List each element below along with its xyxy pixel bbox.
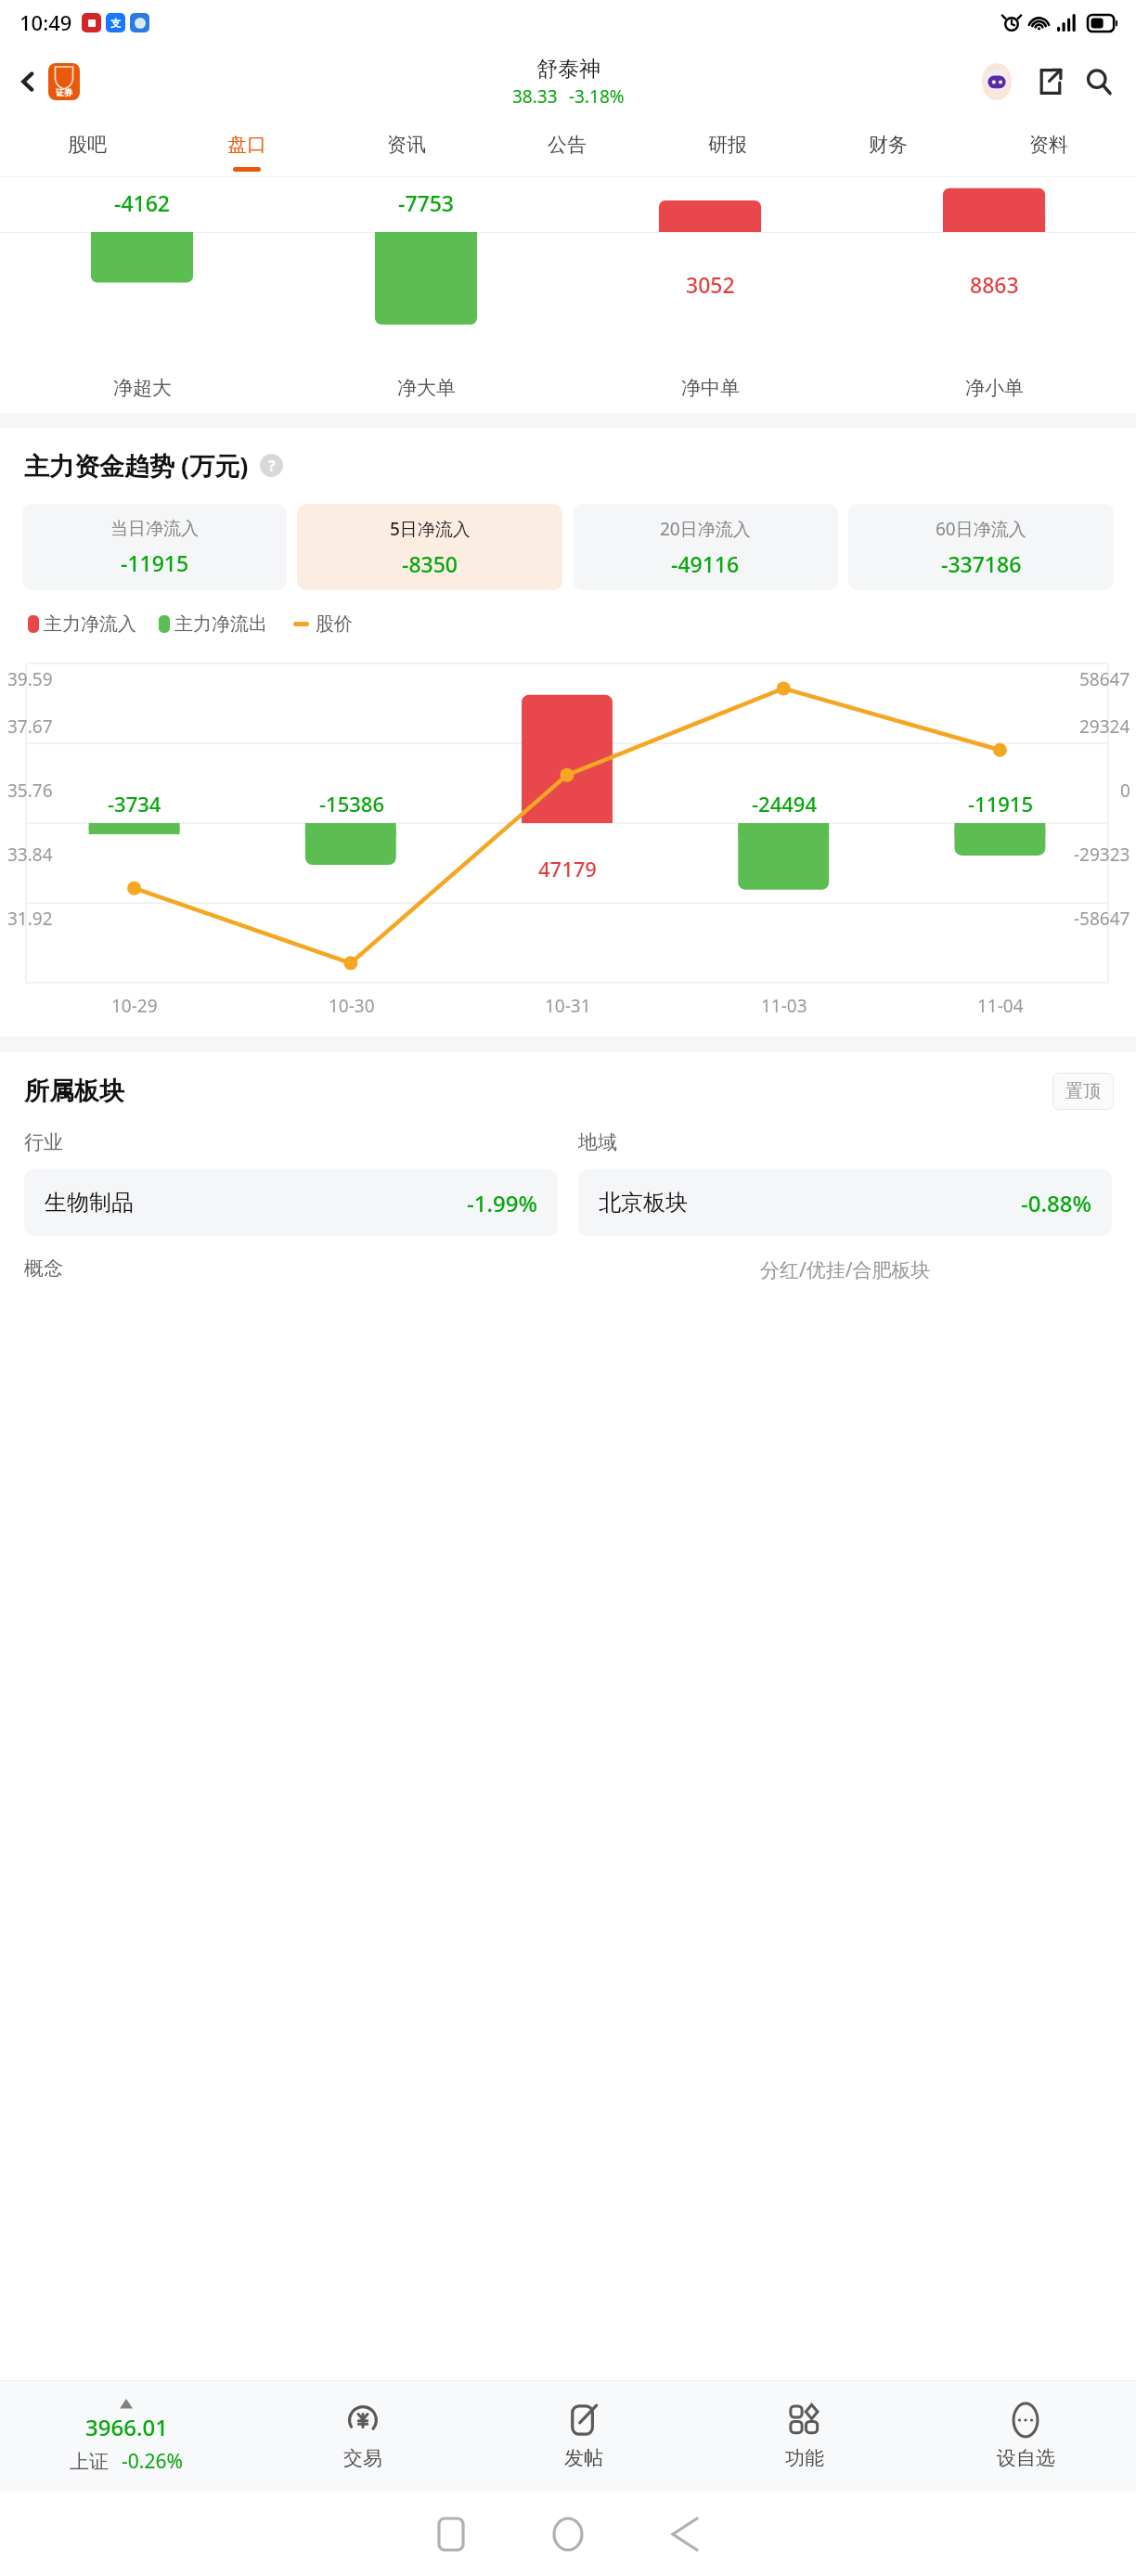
- staticText: 分红/优挂/合肥板块: [760, 1256, 931, 1283]
- staticText: 当日净流入: [110, 518, 199, 540]
- staticText: 主力净流入: [44, 612, 136, 636]
- staticText: -0.26%: [122, 2448, 183, 2475]
- staticText: 发帖: [564, 2446, 603, 2470]
- button[interactable]: 设自选: [915, 2381, 1136, 2492]
- button[interactable]: 北京板块: [578, 1169, 1112, 1236]
- staticText: 功能: [785, 2446, 824, 2470]
- staticText: 10:49: [19, 8, 72, 36]
- staticText: 所属板块: [24, 1075, 124, 1107]
- button[interactable]: 3052: [568, 177, 852, 413]
- button[interactable]: Search: [1078, 61, 1119, 102]
- staticText: 支: [110, 17, 121, 30]
- staticText: -58647: [1074, 907, 1130, 931]
- staticText: -24494: [752, 790, 817, 818]
- button[interactable]: 研报: [647, 119, 807, 176]
- button[interactable]: 置顶: [1052, 1073, 1114, 1110]
- staticText: 研报: [708, 133, 747, 157]
- staticText: 0: [1120, 779, 1130, 803]
- button[interactable]: 舒泰神: [512, 56, 625, 109]
- staticText: 39.59: [7, 667, 53, 691]
- staticText: -1.99%: [467, 1188, 537, 1218]
- staticText: -49116: [671, 549, 740, 578]
- staticText: -337186: [941, 549, 1022, 578]
- staticText: 资讯: [387, 133, 426, 157]
- staticText: 资料: [1029, 133, 1068, 157]
- staticText: 29324: [1079, 715, 1130, 739]
- button[interactable]: 资料: [968, 119, 1129, 176]
- button[interactable]: -7753: [284, 177, 568, 413]
- staticText: 3052: [686, 270, 735, 299]
- staticText: 33.84: [7, 843, 53, 867]
- staticText: 概念: [24, 1256, 63, 1281]
- staticText: 证券: [56, 87, 72, 97]
- staticText: -3734: [108, 790, 161, 818]
- button[interactable]: Back: [652, 2502, 717, 2567]
- staticText: 38.33: [512, 84, 558, 109]
- button[interactable]: AI assistant: [976, 61, 1017, 102]
- staticText: 20日净流入: [660, 517, 751, 541]
- staticText: 31.92: [7, 907, 53, 931]
- button[interactable]: 3966.01: [0, 2381, 252, 2492]
- staticText: 47179: [538, 855, 597, 882]
- staticText: 地域: [578, 1130, 617, 1154]
- staticText: 主力净流出: [174, 612, 267, 636]
- staticText: 交易: [343, 2446, 382, 2470]
- staticText: -11915: [121, 548, 189, 577]
- staticText: 3966.01: [85, 2412, 168, 2442]
- staticText: 8863: [970, 270, 1019, 299]
- staticText: 10-31: [545, 994, 591, 1018]
- button[interactable]: 资讯: [327, 119, 486, 176]
- staticText: -3.18%: [569, 84, 625, 109]
- staticText: 财务: [869, 133, 908, 157]
- staticText: 11-04: [977, 994, 1024, 1018]
- staticText: 10-29: [111, 994, 158, 1018]
- staticText: -11915: [968, 790, 1033, 818]
- button[interactable]: Home: [536, 2502, 600, 2567]
- button[interactable]: 生物制品: [24, 1169, 558, 1236]
- staticText: -7753: [398, 188, 455, 217]
- staticText: 净中单: [681, 376, 740, 400]
- button[interactable]: 股吧: [7, 119, 167, 176]
- staticText: 净小单: [965, 376, 1024, 400]
- button[interactable]: 8863: [852, 177, 1136, 413]
- button[interactable]: Back: [9, 58, 87, 106]
- staticText: -29323: [1074, 843, 1130, 867]
- button[interactable]: Recents: [419, 2502, 484, 2567]
- staticText: 60日净流入: [936, 517, 1026, 541]
- button[interactable]: 财务: [807, 119, 968, 176]
- staticText: 净大单: [397, 376, 456, 400]
- staticText: ?: [268, 456, 276, 476]
- button[interactable]: 功能: [694, 2381, 915, 2492]
- staticText: 上证: [70, 2450, 109, 2474]
- staticText: 净超大: [113, 376, 172, 400]
- staticText: -4162: [114, 188, 171, 217]
- staticText: 主力资金趋势 (万元): [24, 448, 249, 483]
- button[interactable]: Share: [1028, 61, 1069, 102]
- button[interactable]: 公告: [486, 119, 647, 176]
- staticText: 盘口: [227, 133, 266, 157]
- staticText: 35.76: [7, 779, 53, 803]
- button[interactable]: 5日净流入: [297, 504, 562, 590]
- button[interactable]: 20日净流入: [573, 504, 838, 590]
- staticText: 58647: [1079, 667, 1130, 691]
- button[interactable]: 60日净流入: [848, 504, 1114, 590]
- button[interactable]: 盘口: [167, 119, 327, 176]
- button[interactable]: 发帖: [473, 2381, 694, 2492]
- staticText: 舒泰神: [536, 56, 600, 83]
- staticText: -0.88%: [1021, 1188, 1091, 1218]
- button[interactable]: 交易: [252, 2381, 473, 2492]
- staticText: -15386: [319, 790, 384, 818]
- staticText: 11-03: [761, 994, 807, 1018]
- staticText: 10-30: [329, 994, 375, 1018]
- staticText: 37.67: [7, 715, 53, 739]
- staticText: -8350: [402, 549, 458, 578]
- staticText: 置顶: [1065, 1080, 1101, 1102]
- staticText: 行业: [24, 1130, 63, 1154]
- staticText: 5日净流入: [390, 517, 471, 541]
- button[interactable]: 当日净流入: [22, 504, 287, 590]
- button[interactable]: Help: [260, 454, 283, 477]
- staticText: 北京板块: [599, 1189, 688, 1217]
- staticText: 设自选: [997, 2446, 1055, 2470]
- button[interactable]: -4162: [0, 177, 284, 413]
- staticText: 公告: [548, 133, 587, 157]
